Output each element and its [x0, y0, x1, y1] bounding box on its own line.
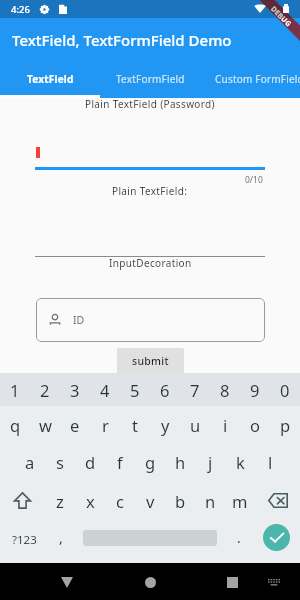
button[interactable]: q: [0, 406, 30, 443]
button[interactable]: d: [75, 443, 105, 481]
button[interactable]: m: [225, 481, 255, 520]
staticText: 7: [190, 379, 200, 401]
staticText: Plain TextField (Password): [85, 97, 215, 111]
button[interactable]: Back: [55, 570, 79, 594]
staticText: m: [232, 490, 248, 512]
staticText: f: [117, 451, 123, 473]
button[interactable]: f: [105, 443, 135, 481]
button[interactable]: t: [120, 406, 150, 443]
button[interactable]: Comma: [48, 520, 73, 560]
staticText: c: [116, 490, 124, 512]
button[interactable]: e: [60, 406, 90, 443]
staticText: TextField, TextFormField Demo: [12, 30, 232, 50]
staticText: 8: [220, 379, 230, 401]
button[interactable]: Switch keyboard: [264, 572, 284, 592]
staticText: p: [280, 414, 291, 436]
staticText: u: [190, 414, 201, 436]
button[interactable]: v: [135, 481, 165, 520]
staticText: z: [56, 490, 64, 512]
button[interactable]: Custom FormField: [200, 65, 300, 98]
staticText: 9: [250, 379, 260, 401]
staticText: ID: [73, 313, 85, 327]
button[interactable]: x: [75, 481, 105, 520]
button[interactable]: s: [45, 443, 75, 481]
button[interactable]: i: [210, 406, 240, 443]
staticText: 2: [40, 379, 50, 401]
button[interactable]: b: [165, 481, 195, 520]
staticText: 1: [10, 379, 20, 401]
staticText: 3: [70, 379, 80, 401]
button[interactable]: Backspace: [255, 481, 300, 520]
staticText: 0: [280, 379, 290, 401]
staticText: .: [237, 528, 241, 547]
staticText: r: [102, 414, 109, 436]
button[interactable]: Enter: [263, 524, 290, 551]
button[interactable]: z: [45, 481, 75, 520]
button[interactable]: 3: [60, 373, 90, 406]
staticText: TextFormField: [116, 72, 185, 86]
button[interactable]: k: [225, 443, 255, 481]
staticText: t: [132, 414, 138, 436]
staticText: 4:26: [11, 3, 30, 16]
staticText: w: [39, 414, 52, 436]
staticText: Custom FormField: [215, 72, 300, 86]
staticText: InputDecoration: [109, 256, 192, 270]
button[interactable]: l: [255, 443, 285, 481]
button[interactable]: 1: [0, 373, 30, 406]
staticText: DEBUG: [268, 4, 294, 30]
button[interactable]: 2: [30, 373, 60, 406]
button[interactable]: a: [15, 443, 45, 481]
button[interactable]: 5: [120, 373, 150, 406]
staticText: y: [161, 414, 170, 436]
staticText: 4: [100, 379, 110, 401]
staticText: d: [85, 451, 96, 473]
staticText: 5: [130, 379, 140, 401]
staticText: n: [205, 490, 216, 512]
button[interactable]: Recents: [220, 570, 244, 594]
staticText: v: [146, 490, 155, 512]
button[interactable]: Home: [138, 570, 162, 594]
button[interactable]: o: [240, 406, 270, 443]
staticText: 0/10: [245, 174, 263, 186]
button[interactable]: 7: [180, 373, 210, 406]
staticText: Plain TextField:: [112, 184, 188, 198]
button[interactable]: 4: [90, 373, 120, 406]
staticText: i: [223, 414, 228, 436]
staticText: ,: [59, 528, 63, 547]
staticText: submit: [132, 354, 169, 368]
button[interactable]: r: [90, 406, 120, 443]
button[interactable]: TextFormField: [100, 65, 200, 98]
button[interactable]: 0: [270, 373, 300, 406]
button[interactable]: h: [165, 443, 195, 481]
button[interactable]: y: [150, 406, 180, 443]
staticText: h: [175, 451, 186, 473]
staticText: q: [10, 414, 21, 436]
button[interactable]: u: [180, 406, 210, 443]
staticText: g: [145, 451, 156, 473]
staticText: 6: [160, 379, 170, 401]
staticText: s: [56, 451, 64, 473]
button[interactable]: g: [135, 443, 165, 481]
button[interactable]: n: [195, 481, 225, 520]
button[interactable]: 8: [210, 373, 240, 406]
button[interactable]: 9: [240, 373, 270, 406]
button[interactable]: submit: [117, 348, 184, 374]
button[interactable]: 6: [150, 373, 180, 406]
button[interactable]: ?123: [0, 520, 48, 560]
button[interactable]: j: [195, 443, 225, 481]
button[interactable]: p: [270, 406, 300, 443]
staticText: x: [86, 490, 95, 512]
staticText: ?123: [12, 532, 37, 548]
staticText: e: [70, 414, 80, 436]
button[interactable]: Period: [226, 520, 251, 560]
staticText: l: [268, 451, 273, 473]
button[interactable]: TextField: [0, 65, 100, 98]
button[interactable]: ID: [36, 298, 265, 342]
button[interactable]: Shift: [0, 481, 45, 520]
button[interactable]: w: [30, 406, 60, 443]
staticText: b: [175, 490, 186, 512]
staticText: k: [236, 451, 245, 473]
button[interactable]: c: [105, 481, 135, 520]
staticText: o: [250, 414, 260, 436]
